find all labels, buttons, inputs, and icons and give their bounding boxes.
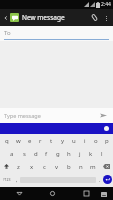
staticText: k: [89, 150, 93, 158]
staticText: y: [61, 137, 65, 145]
button[interactable]: f: [41, 147, 52, 160]
button[interactable]: a: [6, 147, 18, 160]
button[interactable]: Back: [13, 187, 26, 200]
button[interactable]: s: [18, 147, 30, 160]
staticText: To: [4, 29, 11, 37]
staticText: Type message: [4, 112, 98, 119]
staticText: g: [56, 150, 60, 158]
button[interactable]: v: [51, 160, 63, 173]
button[interactable]: b: [63, 160, 75, 173]
button[interactable]: n: [75, 160, 87, 173]
staticText: ?123: [3, 177, 11, 182]
button[interactable]: r: [35, 134, 46, 147]
staticText: q: [5, 137, 9, 145]
staticText: New message: [22, 13, 88, 22]
button[interactable]: w: [13, 134, 24, 147]
button[interactable]: u: [68, 134, 79, 147]
button[interactable]: Navigate up: [2, 14, 10, 22]
button[interactable]: e: [24, 134, 35, 147]
button[interactable]: t: [46, 134, 57, 147]
staticText: r: [39, 137, 42, 145]
button[interactable]: z: [12, 160, 25, 173]
button[interactable]: ?123: [1, 173, 13, 186]
button[interactable]: Attach: [88, 11, 101, 24]
staticText: i: [84, 137, 86, 145]
button[interactable]: Send: [98, 110, 109, 121]
button[interactable]: q: [1, 134, 13, 147]
staticText: x: [30, 163, 34, 171]
staticText: 2:44: [101, 1, 111, 8]
button[interactable]: p: [101, 134, 112, 147]
staticText: d: [34, 150, 38, 158]
staticText: n: [79, 163, 83, 171]
staticText: l: [101, 150, 103, 158]
staticText: z: [17, 163, 20, 171]
button[interactable]: o: [90, 134, 101, 147]
staticText: ,: [16, 176, 18, 183]
button[interactable]: i: [79, 134, 90, 147]
staticText: h: [67, 150, 71, 158]
staticText: b: [67, 163, 71, 171]
staticText: m: [90, 163, 96, 171]
staticText: o: [94, 137, 98, 145]
button[interactable]: l: [96, 147, 107, 160]
button[interactable]: .: [96, 173, 103, 186]
staticText: s: [23, 150, 26, 158]
button[interactable]: Shift: [0, 160, 12, 173]
staticText: j: [79, 150, 81, 158]
button[interactable]: Recent apps: [80, 187, 93, 200]
button[interactable]: g: [52, 147, 63, 160]
button[interactable]: h: [63, 147, 74, 160]
staticText: a: [10, 150, 14, 158]
button[interactable]: k: [85, 147, 96, 160]
staticText: w: [16, 137, 21, 145]
staticText: c: [43, 163, 46, 171]
button[interactable]: Backspace: [99, 160, 113, 173]
button[interactable]: ,: [13, 173, 20, 186]
button[interactable]: j: [74, 147, 85, 160]
button[interactable]: Voice input: [104, 126, 109, 131]
staticText: e: [28, 137, 32, 145]
staticText: t: [50, 137, 53, 145]
button[interactable]: More options: [101, 13, 111, 23]
button[interactable]: d: [30, 147, 41, 160]
button[interactable]: x: [25, 160, 38, 173]
button[interactable]: To: [0, 26, 113, 41]
button[interactable]: Switch keyboard: [98, 188, 110, 200]
staticText: f: [45, 150, 48, 158]
staticText: p: [105, 137, 109, 145]
button[interactable]: m: [87, 160, 99, 173]
staticText: v: [55, 163, 59, 171]
button[interactable]: c: [38, 160, 51, 173]
button[interactable]: Enter: [103, 175, 112, 184]
button[interactable]: y: [57, 134, 68, 147]
staticText: .: [99, 176, 101, 183]
button[interactable]: Home: [46, 187, 59, 200]
button[interactable]: Type message: [0, 108, 113, 123]
staticText: u: [72, 137, 76, 145]
